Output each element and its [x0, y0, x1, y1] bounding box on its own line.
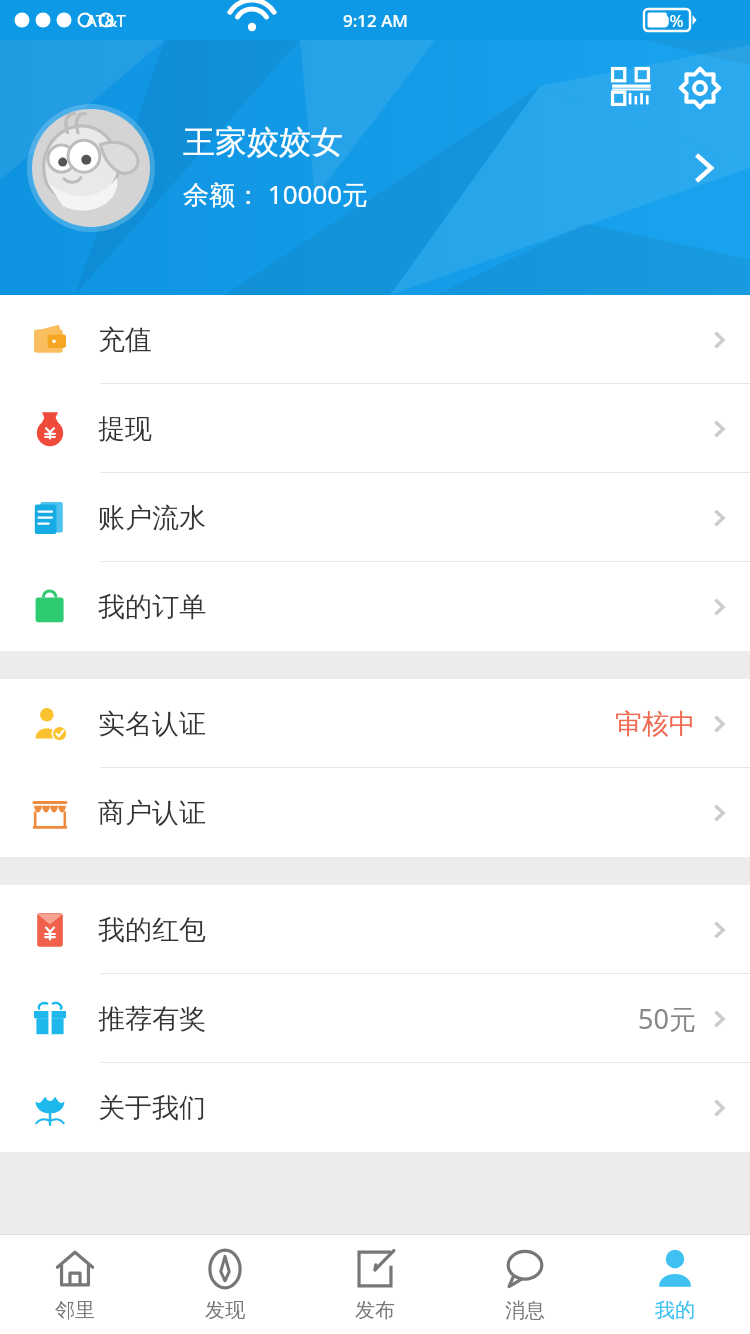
button[interactable]: 提现: [0, 384, 750, 473]
button[interactable]: 发现: [150, 1234, 300, 1334]
staticText: 我的订单: [98, 590, 206, 624]
button[interactable]: 商户认证: [0, 768, 750, 857]
staticText: 关于我们: [98, 1091, 206, 1125]
staticText: 9:12 AM: [343, 9, 408, 32]
button[interactable]: 邻里: [0, 1234, 150, 1334]
staticText: 发布: [355, 1298, 395, 1323]
staticText: 我的: [655, 1298, 695, 1323]
staticText: 消息: [505, 1298, 545, 1323]
staticText: 我的红包: [98, 913, 206, 947]
button[interactable]: 消息: [450, 1234, 600, 1334]
staticText: 充值: [98, 323, 152, 357]
staticText: 账户流水: [98, 501, 206, 535]
staticText: 商户认证: [98, 796, 206, 830]
staticText: 王家姣姣女: [183, 122, 343, 162]
button[interactable]: 实名认证: [0, 679, 750, 768]
button[interactable]: 我的红包: [0, 885, 750, 974]
button[interactable]: 关于我们: [0, 1063, 750, 1152]
button[interactable]: 账户流水: [0, 473, 750, 562]
staticText: AT&T: [86, 9, 126, 32]
button[interactable]: 发布: [300, 1234, 450, 1334]
button[interactable]: 充值: [0, 295, 750, 384]
staticText: 审核中: [615, 707, 696, 741]
button[interactable]: 我的订单: [0, 562, 750, 651]
button[interactable]: 个人资料: [676, 140, 732, 196]
staticText: 50%: [650, 9, 684, 32]
staticText: 提现: [98, 412, 152, 446]
staticText: 推荐有奖: [98, 1002, 206, 1036]
button[interactable]: 我的: [600, 1234, 750, 1334]
button[interactable]: 设置: [672, 60, 728, 116]
button[interactable]: 推荐有奖: [0, 974, 750, 1063]
staticText: 邻里: [55, 1298, 95, 1323]
staticText: 实名认证: [98, 707, 206, 741]
staticText: 余额： 10000元: [183, 176, 369, 212]
staticText: 50元: [638, 1000, 696, 1037]
staticText: 发现: [205, 1298, 245, 1323]
button[interactable]: 扫一扫: [604, 60, 660, 116]
